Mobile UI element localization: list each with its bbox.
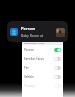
button[interactable]: Vehicle toggle	[54, 75, 61, 79]
button[interactable]: Package toggle	[54, 84, 61, 88]
button[interactable]: Familiar Faces	[22, 54, 63, 63]
button[interactable]: Pet	[22, 63, 63, 72]
staticText: Package	[24, 84, 54, 88]
staticText: DETECTION TYPES	[24, 41, 45, 44]
staticText: Familiar Faces	[24, 57, 54, 61]
button[interactable]: Person	[22, 45, 63, 54]
button[interactable]: Pet toggle	[54, 66, 61, 70]
button[interactable]: Package	[22, 81, 63, 90]
other: App icon	[10, 28, 18, 36]
button[interactable]: App icon	[7, 21, 68, 42]
staticText: Pet	[24, 66, 54, 70]
button[interactable]: Vehicle	[22, 72, 63, 81]
button[interactable]: Person toggle	[54, 48, 61, 52]
staticText: Person Detected	[21, 26, 54, 32]
staticText: Person	[24, 48, 54, 52]
staticText: Baby Room at 7:24PM	[21, 33, 54, 38]
other: Snapshot preview	[56, 28, 65, 37]
staticText: Vehicle	[24, 75, 54, 79]
button[interactable]: Familiar Faces toggle	[54, 57, 61, 61]
